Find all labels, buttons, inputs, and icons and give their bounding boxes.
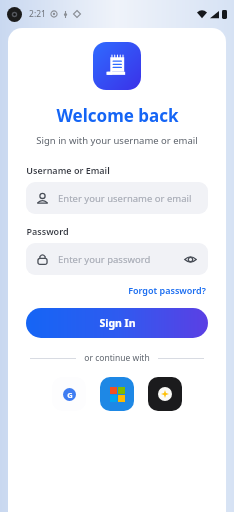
staticText: Enter your username or email	[58, 192, 192, 205]
button[interactable]: Forgot password?	[126, 282, 208, 298]
staticText: Username or Email	[26, 164, 110, 176]
button[interactable]: Continue with Google	[52, 377, 86, 411]
button[interactable]: Continue with another account	[148, 377, 182, 411]
staticText: Password	[26, 225, 69, 237]
staticText: Sign in with your username or email	[36, 134, 198, 147]
button[interactable]: Show password	[183, 252, 198, 267]
staticText: Sign In	[99, 316, 136, 330]
staticText: Welcome back	[56, 104, 179, 127]
staticText: Enter your password	[58, 253, 151, 266]
button[interactable]: Enter your password	[26, 243, 208, 275]
staticText: 2:21	[29, 8, 46, 20]
staticText: or continue with	[84, 352, 150, 364]
button[interactable]: Enter your username or email	[26, 182, 208, 214]
button[interactable]: Continue with Microsoft	[100, 377, 134, 411]
button[interactable]: Sign In	[26, 308, 208, 338]
staticText: G	[67, 390, 73, 400]
staticText: Forgot password?	[128, 284, 206, 296]
